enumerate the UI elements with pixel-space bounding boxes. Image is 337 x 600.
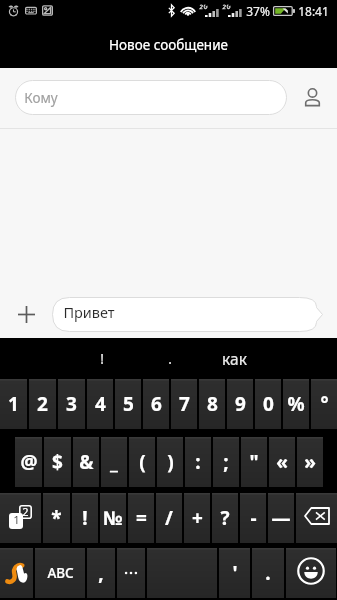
staticText: - [250, 505, 257, 531]
staticText: ; [223, 449, 229, 475]
staticText: , [98, 560, 104, 586]
button[interactable]: 6 [143, 379, 169, 429]
staticText: ! [82, 505, 88, 531]
button[interactable]: 3 [58, 379, 85, 429]
button[interactable]: , [87, 548, 115, 598]
button[interactable]: как [195, 338, 273, 379]
staticText: ' [232, 560, 238, 586]
button[interactable]: ) [157, 437, 183, 487]
staticText: Кому [24, 89, 58, 107]
button[interactable]: Space [147, 548, 217, 598]
button[interactable]: @ [15, 437, 42, 487]
button[interactable]: 0 [255, 379, 281, 429]
button[interactable]: ? [212, 493, 238, 543]
staticText: / [165, 505, 173, 531]
staticText: ( [139, 449, 146, 475]
staticText: . [168, 350, 172, 368]
staticText: ° [320, 391, 329, 417]
staticText: 4 [95, 391, 106, 417]
button[interactable]: . [252, 548, 284, 598]
button[interactable]: $ [44, 437, 71, 487]
button[interactable]: + [184, 493, 210, 543]
staticText: ? [220, 505, 230, 531]
staticText: ABC [47, 564, 74, 582]
staticText: $ [52, 449, 63, 475]
staticText: = [136, 505, 147, 531]
button[interactable]: & [73, 437, 99, 487]
button[interactable]: № [100, 493, 126, 543]
staticText: & [79, 449, 94, 475]
button[interactable]: 9 [227, 379, 253, 429]
button[interactable]: * [43, 493, 70, 543]
button[interactable]: Add attachment [8, 296, 44, 332]
button[interactable]: Привет [52, 297, 323, 332]
staticText: : [195, 449, 201, 475]
staticText: 5 [123, 391, 134, 417]
staticText: 0 [263, 391, 274, 417]
staticText: 8 [207, 391, 218, 417]
button[interactable]: 1 [0, 379, 27, 429]
button[interactable]: 4 [87, 379, 113, 429]
staticText: . [265, 560, 271, 586]
button[interactable]: Switch keyboard page [0, 493, 41, 543]
staticText: 2 [37, 391, 48, 417]
button[interactable]: Choose contact [292, 80, 332, 115]
button[interactable]: 2 [29, 379, 56, 429]
button[interactable]: 5 [115, 379, 141, 429]
staticText: ! [100, 350, 104, 368]
button[interactable]: » [297, 437, 323, 487]
button[interactable]: Backspace [296, 493, 337, 543]
button[interactable]: : [185, 437, 211, 487]
button[interactable]: ! [65, 338, 138, 379]
staticText: " [249, 449, 259, 475]
button[interactable]: 7 [171, 379, 197, 429]
staticText: % [287, 391, 305, 417]
staticText: 18:41 [298, 3, 329, 18]
button[interactable]: ! [72, 493, 98, 543]
button[interactable]: ' [219, 548, 250, 598]
button[interactable]: Emoji [286, 548, 336, 598]
staticText: Новое сообщение [109, 36, 228, 54]
button[interactable]: % [283, 379, 309, 429]
button[interactable]: 8 [199, 379, 225, 429]
button[interactable]: More options [117, 548, 145, 598]
button[interactable]: - [240, 493, 266, 543]
staticText: « [276, 449, 288, 475]
button[interactable]: « [269, 437, 295, 487]
button[interactable]: . [138, 338, 202, 379]
button[interactable]: " [241, 437, 267, 487]
staticText: как [222, 348, 247, 369]
staticText: ) [167, 449, 174, 475]
staticText: » [304, 449, 316, 475]
staticText: 1 [8, 391, 19, 417]
button[interactable]: Кому [15, 80, 287, 115]
staticText: 37% [246, 3, 270, 18]
staticText: + [192, 505, 203, 531]
button[interactable]: _ [101, 437, 127, 487]
staticText: Привет [63, 302, 115, 322]
staticText: 3 [66, 391, 77, 417]
button[interactable]: ° [311, 379, 337, 429]
button[interactable]: — [268, 493, 294, 543]
button[interactable]: = [128, 493, 154, 543]
staticText: 9 [235, 391, 246, 417]
button[interactable]: ; [213, 437, 239, 487]
staticText: № [103, 505, 123, 531]
staticText: 2 [22, 504, 29, 518]
staticText: @ [20, 449, 38, 475]
staticText: 7 [179, 391, 190, 417]
button[interactable]: / [156, 493, 182, 543]
staticText: _ [110, 449, 118, 475]
button[interactable]: Gesture typing [0, 548, 33, 598]
staticText: * [51, 505, 62, 531]
staticText: 6 [151, 391, 162, 417]
staticText: — [271, 505, 291, 531]
button[interactable]: ABC [35, 548, 85, 598]
button[interactable]: ( [129, 437, 155, 487]
staticText: 1 [13, 512, 20, 528]
